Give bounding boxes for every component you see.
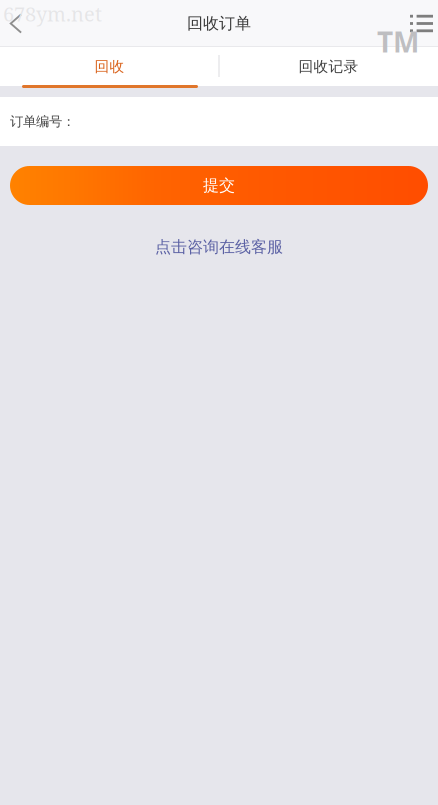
- staticText: 678ym.net: [3, 0, 102, 27]
- button[interactable]: 返回: [0, 0, 44, 47]
- staticText: 点击咨询在线客服: [155, 237, 283, 257]
- staticText: 回收记录: [298, 57, 358, 75]
- button[interactable]: 菜单: [393, 0, 438, 47]
- button[interactable]: 点击咨询在线客服: [131, 232, 307, 262]
- button[interactable]: 回收: [0, 47, 219, 86]
- staticText: 提交: [203, 176, 235, 195]
- staticText: 订单编号：: [10, 113, 75, 130]
- staticText: TM: [377, 23, 419, 60]
- staticText: 回收订单: [187, 14, 251, 33]
- staticText: 回收: [94, 57, 124, 75]
- button[interactable]: 回收记录: [219, 47, 438, 86]
- button[interactable]: 提交: [0, 166, 438, 205]
